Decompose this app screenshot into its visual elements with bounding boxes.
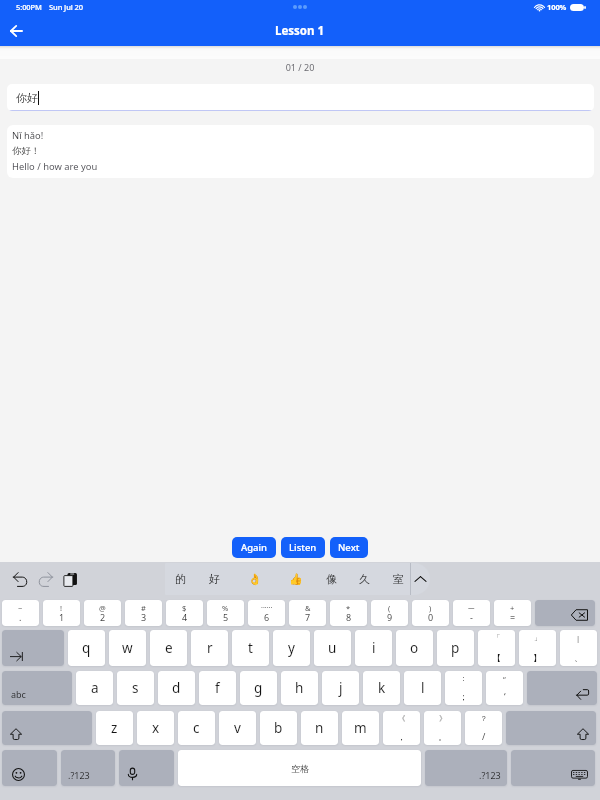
button[interactable]: | bbox=[560, 630, 597, 666]
button[interactable]: t bbox=[232, 630, 269, 666]
button[interactable]: p bbox=[437, 630, 474, 666]
staticText: e bbox=[165, 639, 173, 657]
button[interactable]: c bbox=[178, 711, 215, 745]
button[interactable]: Back bbox=[5, 20, 27, 42]
button[interactable]: 「 bbox=[478, 630, 515, 666]
button[interactable]: .?123 bbox=[425, 750, 507, 786]
button[interactable]: enter bbox=[527, 671, 597, 705]
button[interactable]: % bbox=[207, 600, 244, 626]
button[interactable]: i bbox=[355, 630, 392, 666]
button[interactable]: ! bbox=[43, 600, 80, 626]
button[interactable]: ： bbox=[445, 671, 482, 705]
button[interactable]: emoji bbox=[2, 750, 57, 786]
button[interactable]: mic bbox=[119, 750, 174, 786]
button[interactable]: 久 bbox=[348, 563, 380, 595]
button[interactable]: j bbox=[322, 671, 359, 705]
button[interactable]: a bbox=[76, 671, 113, 705]
staticText: d bbox=[172, 679, 181, 697]
button[interactable]: @ bbox=[84, 600, 121, 626]
button[interactable]: shift bbox=[2, 711, 92, 745]
staticText: 好 bbox=[209, 572, 220, 586]
button[interactable]: 空格 bbox=[178, 750, 421, 786]
staticText: / bbox=[482, 730, 486, 742]
button[interactable]: m bbox=[342, 711, 379, 745]
button[interactable]: shift bbox=[506, 711, 596, 745]
button[interactable]: u bbox=[314, 630, 351, 666]
button[interactable]: e bbox=[150, 630, 187, 666]
button[interactable]: tab bbox=[2, 630, 64, 666]
button[interactable]: 好 bbox=[198, 563, 230, 595]
button[interactable]: # bbox=[125, 600, 162, 626]
button[interactable]: Listen bbox=[281, 537, 325, 558]
staticText: 空格 bbox=[291, 763, 309, 774]
staticText: l bbox=[421, 679, 425, 697]
button[interactable]: r bbox=[191, 630, 228, 666]
button[interactable]: 》 bbox=[424, 711, 461, 745]
button[interactable]: y bbox=[273, 630, 310, 666]
button[interactable]: ) bbox=[412, 600, 449, 626]
button[interactable]: o bbox=[396, 630, 433, 666]
button[interactable]: ？ bbox=[465, 711, 502, 745]
button[interactable]: $ bbox=[166, 600, 203, 626]
button[interactable]: 《 bbox=[383, 711, 420, 745]
staticText: i bbox=[372, 639, 376, 657]
button[interactable]: ······ bbox=[248, 600, 285, 626]
button[interactable]: Undo bbox=[9, 568, 31, 590]
button[interactable]: b bbox=[260, 711, 297, 745]
staticText: x bbox=[152, 719, 160, 737]
button[interactable]: ~ bbox=[2, 600, 39, 626]
button[interactable]: s bbox=[117, 671, 154, 705]
button[interactable]: 室 bbox=[382, 563, 414, 595]
staticText: 4 bbox=[182, 611, 188, 623]
staticText: Listen bbox=[289, 541, 317, 554]
button[interactable]: k bbox=[363, 671, 400, 705]
button[interactable]: Next bbox=[330, 537, 368, 558]
button[interactable]: 」 bbox=[519, 630, 556, 666]
button[interactable]: 像 bbox=[315, 563, 347, 595]
button[interactable]: + bbox=[494, 600, 531, 626]
button[interactable]: f bbox=[199, 671, 236, 705]
button[interactable]: n bbox=[301, 711, 338, 745]
button[interactable]: kbd bbox=[511, 750, 595, 786]
button[interactable]: * bbox=[330, 600, 367, 626]
button[interactable]: l bbox=[404, 671, 441, 705]
staticText: 。 bbox=[438, 731, 447, 742]
staticText: v bbox=[234, 719, 241, 737]
staticText: 3 bbox=[141, 611, 147, 623]
staticText: 、 bbox=[574, 652, 583, 663]
staticText: .?123 bbox=[68, 769, 90, 781]
button[interactable]: h bbox=[281, 671, 318, 705]
staticText: 》 bbox=[439, 714, 447, 723]
button[interactable]: Expand candidates bbox=[411, 563, 430, 595]
button[interactable]: — bbox=[453, 600, 490, 626]
staticText: 100% bbox=[547, 2, 567, 12]
button[interactable]: x bbox=[137, 711, 174, 745]
button[interactable]: 👌 bbox=[239, 563, 271, 595]
staticText: 👍 bbox=[289, 573, 303, 586]
button[interactable]: 的 bbox=[165, 563, 196, 595]
button[interactable]: z bbox=[96, 711, 133, 745]
staticText: ‘ bbox=[504, 690, 506, 702]
button[interactable]: ( bbox=[371, 600, 408, 626]
button[interactable]: g bbox=[240, 671, 277, 705]
button[interactable]: v bbox=[219, 711, 256, 745]
button[interactable]: q bbox=[68, 630, 105, 666]
staticText: p bbox=[451, 639, 460, 657]
button[interactable]: 你好 bbox=[7, 84, 594, 111]
button[interactable]: & bbox=[289, 600, 326, 626]
button[interactable]: d bbox=[158, 671, 195, 705]
staticText: 9 bbox=[387, 611, 393, 623]
button[interactable]: .?123 bbox=[61, 750, 115, 786]
staticText: u bbox=[328, 639, 337, 657]
staticText: 】 bbox=[533, 652, 542, 663]
staticText: 1 bbox=[59, 611, 65, 623]
button[interactable]: Redo bbox=[34, 568, 56, 590]
button[interactable]: abc bbox=[2, 671, 72, 705]
button[interactable]: Paste bbox=[59, 568, 81, 590]
button[interactable]: w bbox=[109, 630, 146, 666]
staticText: Lesson 1 bbox=[275, 23, 325, 39]
button[interactable]: Again bbox=[232, 537, 276, 558]
button[interactable]: back bbox=[535, 600, 595, 626]
button[interactable]: 👍 bbox=[280, 563, 312, 595]
button[interactable]: “ bbox=[486, 671, 523, 705]
